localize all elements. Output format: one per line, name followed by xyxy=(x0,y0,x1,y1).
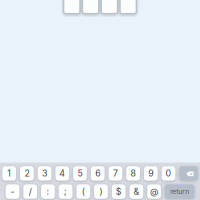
staticText: : xyxy=(46,186,49,197)
button[interactable]: $ xyxy=(112,184,125,199)
button[interactable]: Delete xyxy=(179,166,198,181)
button[interactable]: 6 xyxy=(91,166,104,181)
staticText: @ xyxy=(150,186,158,197)
staticText: 6 xyxy=(95,168,100,179)
staticText: return xyxy=(170,188,189,196)
button[interactable]: @ xyxy=(147,184,161,199)
staticText: 0 xyxy=(165,168,171,179)
button[interactable]: / xyxy=(23,184,37,199)
button[interactable]: ; xyxy=(59,184,72,199)
button[interactable]: : xyxy=(41,184,55,199)
staticText: ( xyxy=(82,186,85,197)
button[interactable]: 4 xyxy=(55,166,69,181)
button[interactable]: - xyxy=(6,184,19,199)
button[interactable]: Code digit xyxy=(101,0,117,14)
button[interactable]: 0 xyxy=(162,166,175,181)
button[interactable]: Code digit xyxy=(120,0,136,14)
button[interactable]: 7 xyxy=(108,166,122,181)
staticText: 5 xyxy=(77,168,82,179)
button[interactable]: ( xyxy=(76,184,90,199)
staticText: 7 xyxy=(113,168,118,179)
staticText: / xyxy=(29,186,32,197)
button[interactable]: 5 xyxy=(73,166,87,181)
staticText: 8 xyxy=(131,168,136,179)
button[interactable]: return xyxy=(165,184,194,199)
staticText: $ xyxy=(116,186,122,197)
button[interactable]: 3 xyxy=(38,166,51,181)
button[interactable]: 9 xyxy=(144,166,158,181)
button[interactable]: & xyxy=(130,184,143,199)
staticText: 9 xyxy=(148,168,153,179)
staticText: ; xyxy=(64,186,67,197)
staticText: & xyxy=(133,186,139,197)
staticText: - xyxy=(10,186,14,197)
button[interactable]: ) xyxy=(94,184,108,199)
staticText: 3 xyxy=(42,168,47,179)
button[interactable]: 2 xyxy=(20,166,34,181)
button[interactable]: Code digit xyxy=(82,0,99,14)
button[interactable]: Code digit xyxy=(64,0,80,14)
staticText: 1 xyxy=(7,168,11,179)
staticText: 4 xyxy=(59,168,65,179)
button[interactable]: 8 xyxy=(126,166,140,181)
staticText: ) xyxy=(99,186,102,197)
staticText: 2 xyxy=(24,168,29,179)
button[interactable]: 1 xyxy=(2,166,16,181)
